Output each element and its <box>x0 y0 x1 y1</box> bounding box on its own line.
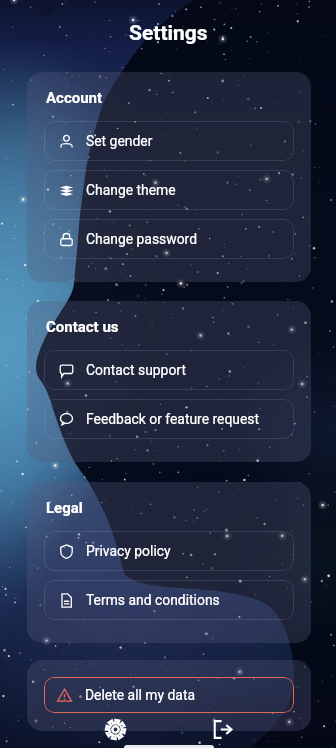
staticText: Delete all my data <box>85 687 196 703</box>
button[interactable]: Change password <box>44 219 294 259</box>
button[interactable]: Log out <box>205 712 239 746</box>
staticText: Account <box>46 89 103 107</box>
staticText: Contact support <box>86 362 186 378</box>
button[interactable]: Privacy policy <box>44 531 294 571</box>
staticText: Contact us <box>46 318 119 336</box>
button[interactable]: Contact support <box>44 350 294 390</box>
button[interactable]: Change theme <box>44 170 294 210</box>
staticText: Terms and conditions <box>86 592 220 608</box>
button[interactable]: Feedback or feature request <box>44 399 294 439</box>
staticText: Legal <box>46 499 83 517</box>
staticText: Settings <box>129 21 208 46</box>
staticText: Feedback or feature request <box>86 411 260 427</box>
staticText: Privacy policy <box>86 543 171 559</box>
button[interactable]: Settings <box>98 712 132 746</box>
button[interactable]: Set gender <box>44 121 294 161</box>
button[interactable]: Terms and conditions <box>44 580 294 620</box>
button[interactable]: Delete all my data <box>44 677 294 713</box>
staticText: Change theme <box>86 182 176 198</box>
staticText: Change password <box>86 231 197 247</box>
staticText: Set gender <box>86 133 153 149</box>
staticText: 11:25 <box>23 3 54 17</box>
